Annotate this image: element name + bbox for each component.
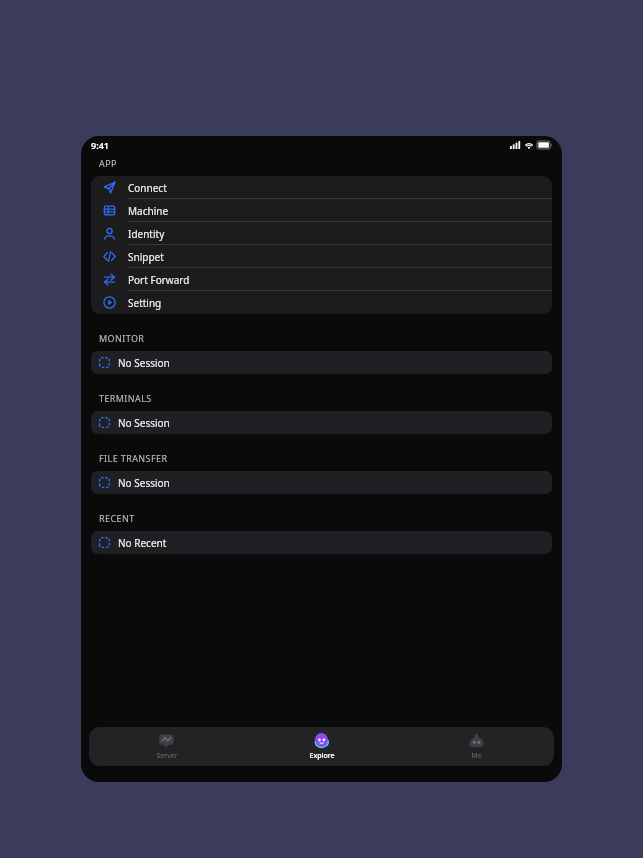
staticText: No Session <box>118 356 170 370</box>
staticText: Explore <box>309 751 335 761</box>
staticText: MONITOR <box>99 332 145 344</box>
button[interactable]: Machine <box>91 199 552 222</box>
staticText: Machine <box>128 204 169 218</box>
staticText: FILE TRANSFER <box>99 452 168 464</box>
button[interactable]: Identity <box>91 222 552 245</box>
staticText: APP <box>99 157 117 169</box>
button[interactable]: Snippet <box>91 245 552 268</box>
button[interactable]: Setting <box>91 291 552 314</box>
staticText: No Session <box>118 416 170 430</box>
staticText: 9:41 <box>91 139 109 151</box>
button[interactable]: No Session <box>91 471 552 494</box>
button[interactable]: No Session <box>91 351 552 374</box>
button[interactable]: Server <box>89 732 244 761</box>
staticText: Identity <box>128 227 165 241</box>
staticText: RECENT <box>99 512 135 524</box>
staticText: No Recent <box>118 536 167 550</box>
staticText: Connect <box>128 181 167 195</box>
button[interactable]: No Recent <box>91 531 552 554</box>
staticText: No Session <box>118 476 170 490</box>
button[interactable]: Explore <box>244 732 399 761</box>
button[interactable]: Port Forward <box>91 268 552 291</box>
staticText: TERMINALS <box>99 392 152 404</box>
staticText: Snippet <box>128 250 164 264</box>
staticText: Me <box>471 751 482 761</box>
button[interactable]: Me <box>399 732 554 761</box>
staticText: Port Forward <box>128 273 190 287</box>
button[interactable]: Connect <box>91 176 552 199</box>
button[interactable]: No Session <box>91 411 552 434</box>
staticText: Setting <box>128 296 162 310</box>
staticText: Server <box>156 751 178 761</box>
